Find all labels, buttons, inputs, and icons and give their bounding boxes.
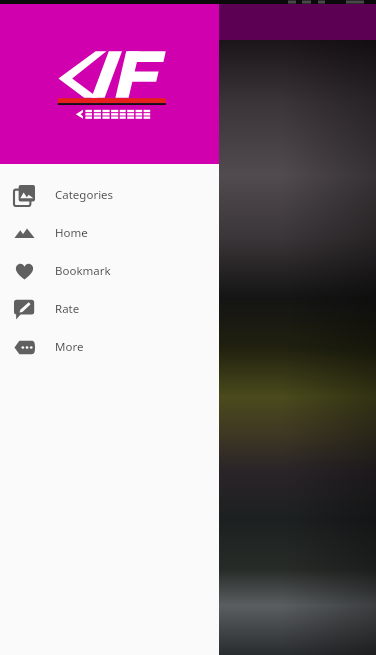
staticText: Rate	[55, 301, 80, 317]
button[interactable]: Bookmark	[0, 252, 219, 290]
staticText: Categories	[55, 187, 114, 203]
button[interactable]: Categories	[0, 176, 219, 214]
other: Home	[0, 214, 48, 252]
staticText: Home	[55, 225, 88, 241]
button[interactable]: More	[0, 328, 219, 366]
other: Rate	[0, 290, 48, 328]
other: Categories	[0, 176, 48, 214]
button[interactable]: Home	[0, 214, 219, 252]
other: Bookmark	[0, 252, 48, 290]
other: More	[0, 328, 48, 366]
button[interactable]: Rate	[0, 290, 219, 328]
staticText: More	[55, 339, 84, 355]
staticText: Bookmark	[55, 263, 111, 279]
